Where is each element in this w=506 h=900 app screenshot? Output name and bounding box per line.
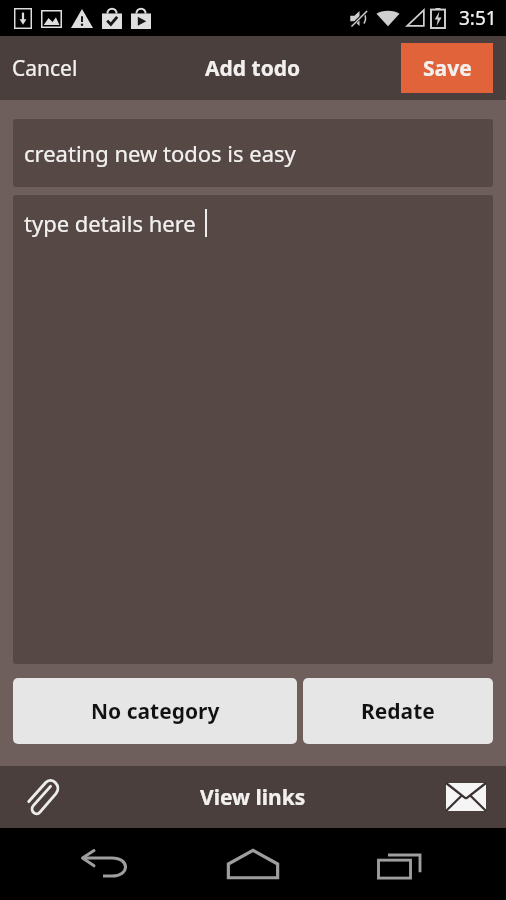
staticText: type details here — [24, 208, 196, 238]
button[interactable]: View links — [178, 773, 328, 822]
staticText: Redate — [361, 697, 435, 726]
staticText: No category — [91, 697, 220, 726]
staticText: creating new todos is easy — [24, 138, 296, 168]
button[interactable]: Redate — [303, 678, 493, 744]
button[interactable]: Email — [440, 771, 492, 823]
button[interactable]: creating new todos is easy — [13, 119, 493, 187]
button[interactable]: Save — [401, 43, 493, 93]
staticText: Add todo — [205, 54, 301, 83]
button[interactable]: type details here — [13, 195, 493, 664]
button[interactable]: Home — [211, 835, 295, 893]
button[interactable]: Recents — [359, 835, 443, 893]
button[interactable]: Back — [64, 835, 148, 893]
button[interactable]: Attach file — [12, 768, 70, 826]
staticText: 3:51 — [459, 5, 497, 31]
button[interactable]: Cancel — [0, 36, 90, 100]
staticText: Save — [423, 54, 472, 83]
button[interactable]: No category — [13, 678, 297, 744]
staticText: View links — [200, 783, 306, 812]
staticText: Cancel — [12, 54, 78, 83]
